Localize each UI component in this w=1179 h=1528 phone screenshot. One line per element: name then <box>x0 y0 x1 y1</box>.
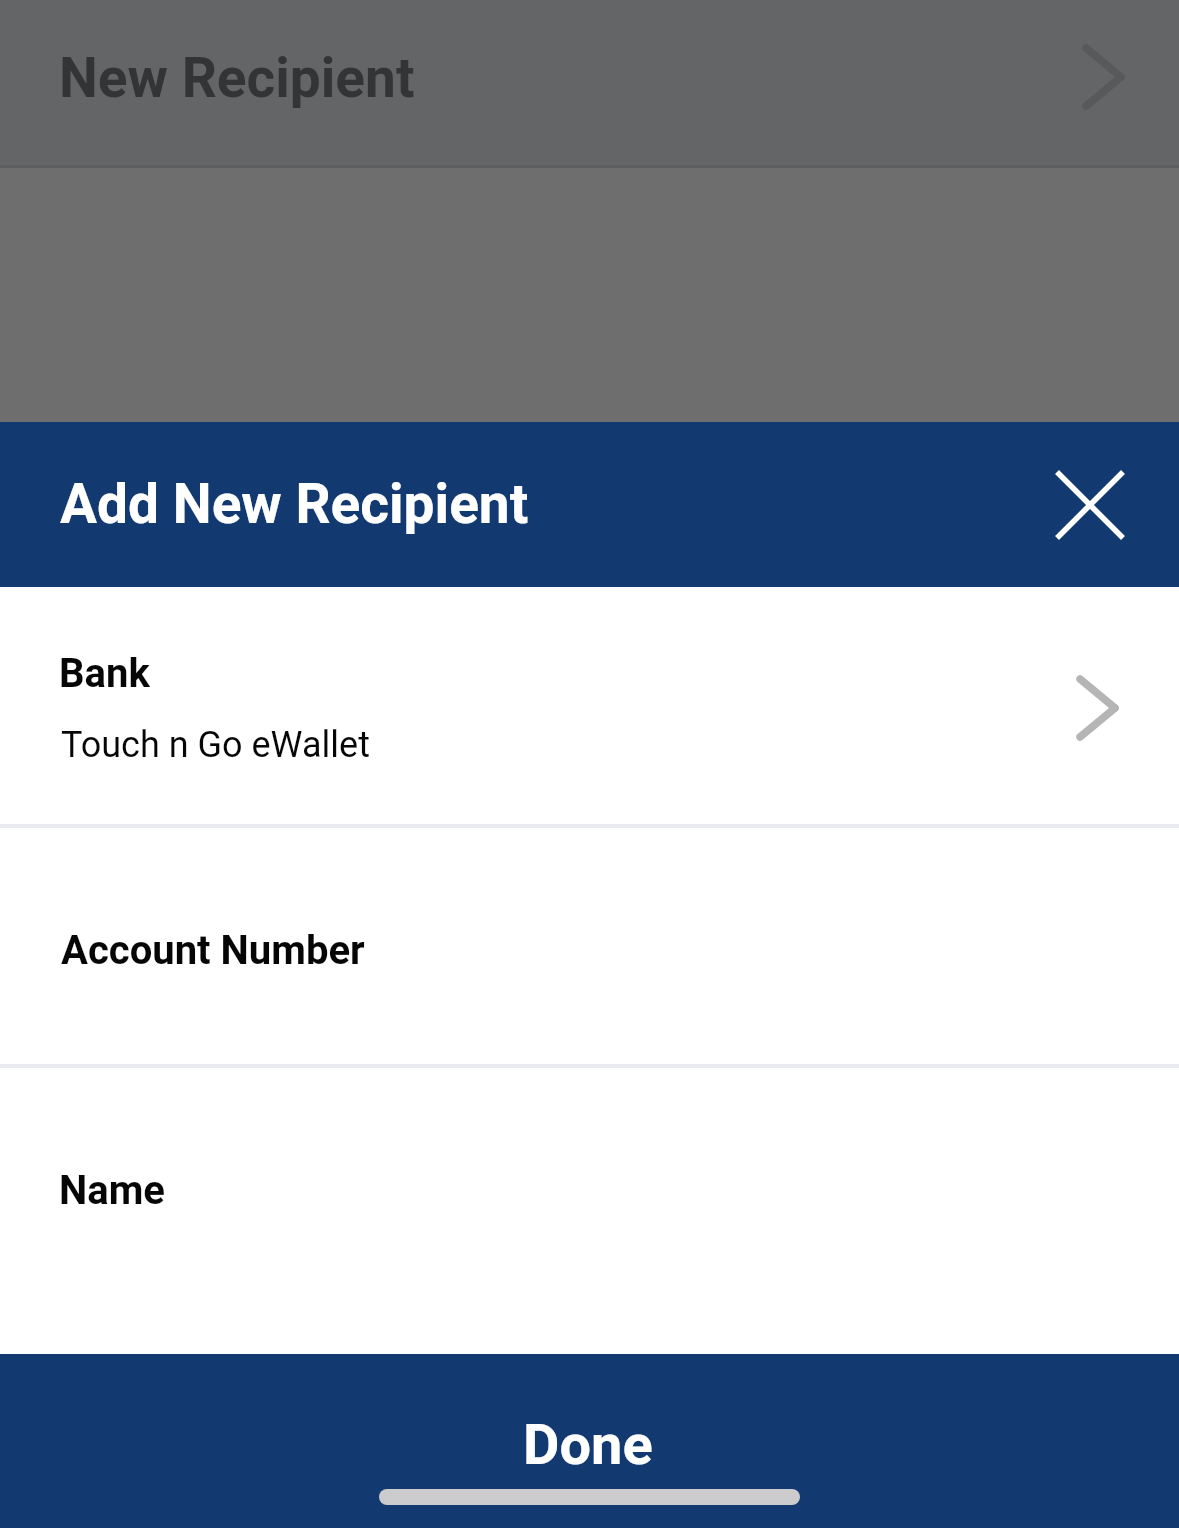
button[interactable]: Close <box>1040 455 1140 555</box>
staticText: Name <box>59 1167 165 1214</box>
button[interactable]: Account Number <box>0 828 1179 1064</box>
button[interactable]: Bank <box>0 587 1179 824</box>
button[interactable]: New Recipient <box>0 0 1179 165</box>
staticText: Touch n Go eWallet <box>61 724 370 766</box>
staticText: Done <box>523 1412 653 1478</box>
staticText: Bank <box>59 650 150 697</box>
staticText: New Recipient <box>59 46 415 110</box>
staticText: Account Number <box>61 927 365 974</box>
button[interactable]: Name <box>0 1068 1179 1354</box>
staticText: Add New Recipient <box>60 472 529 536</box>
button[interactable]: Done <box>0 1354 1179 1528</box>
